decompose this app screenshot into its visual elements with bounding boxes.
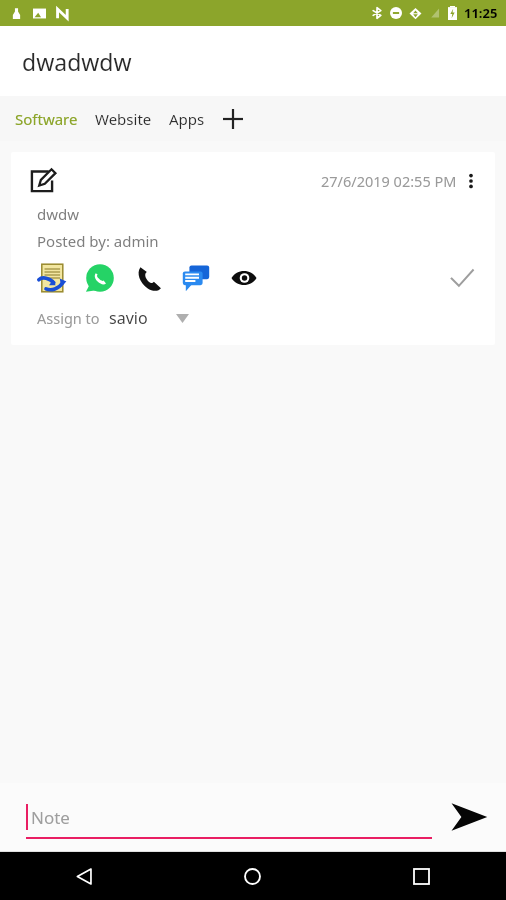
staticText: dwdw bbox=[37, 204, 80, 224]
button[interactable]: Call bbox=[131, 261, 165, 295]
staticText: Apps bbox=[169, 109, 205, 129]
staticText: Posted by: admin bbox=[37, 231, 159, 251]
staticText: 27/6/2019 02:55 PM bbox=[321, 171, 457, 191]
button[interactable]: Apps bbox=[167, 103, 207, 135]
staticText: Note bbox=[31, 806, 70, 829]
button[interactable]: Edit bbox=[11, 152, 495, 345]
staticText: Software bbox=[15, 109, 78, 129]
button[interactable]: Recent apps bbox=[337, 852, 506, 900]
button[interactable]: Send bbox=[446, 794, 492, 840]
button[interactable]: Software bbox=[13, 103, 80, 135]
staticText: Website bbox=[95, 109, 152, 129]
staticText: Assign to bbox=[37, 308, 100, 328]
button[interactable]: savio bbox=[109, 307, 189, 329]
button[interactable]: Back bbox=[0, 852, 168, 900]
staticText: 11:25 bbox=[464, 4, 498, 22]
button[interactable]: WhatsApp bbox=[83, 261, 117, 295]
staticText: savio bbox=[109, 307, 148, 329]
button[interactable]: Website bbox=[93, 103, 154, 135]
staticText: dwadwdw bbox=[22, 46, 132, 77]
button[interactable]: More options bbox=[457, 167, 485, 195]
button[interactable]: Done bbox=[445, 261, 479, 295]
button[interactable]: Message bbox=[179, 261, 213, 295]
button[interactable]: Note bbox=[26, 795, 432, 839]
button[interactable]: View bbox=[227, 261, 261, 295]
button[interactable]: Add bbox=[218, 104, 248, 134]
button[interactable]: Call log bbox=[35, 261, 69, 295]
button[interactable]: Home bbox=[168, 852, 337, 900]
button[interactable]: Edit bbox=[25, 164, 59, 198]
